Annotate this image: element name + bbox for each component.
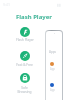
staticText: Safe Browsing (14, 86, 35, 94)
button[interactable]: Safe browsing (14, 73, 35, 94)
button[interactable]: Flash Player (16, 13, 52, 21)
staticText: App (50, 67, 55, 71)
button[interactable]: Flash Player (16, 27, 34, 42)
staticText: 9:41 (3, 2, 10, 7)
button[interactable]: App two (50, 83, 62, 92)
staticText: Fast & Free (16, 63, 33, 67)
staticText: Apps (49, 50, 57, 54)
staticText: Flash Player (16, 38, 34, 42)
button[interactable]: App one (50, 62, 62, 71)
staticText: ▮▮ (57, 3, 61, 7)
staticText: Flash Player (16, 13, 52, 21)
button[interactable]: Fast and free (16, 51, 33, 67)
staticText: App (50, 88, 55, 92)
